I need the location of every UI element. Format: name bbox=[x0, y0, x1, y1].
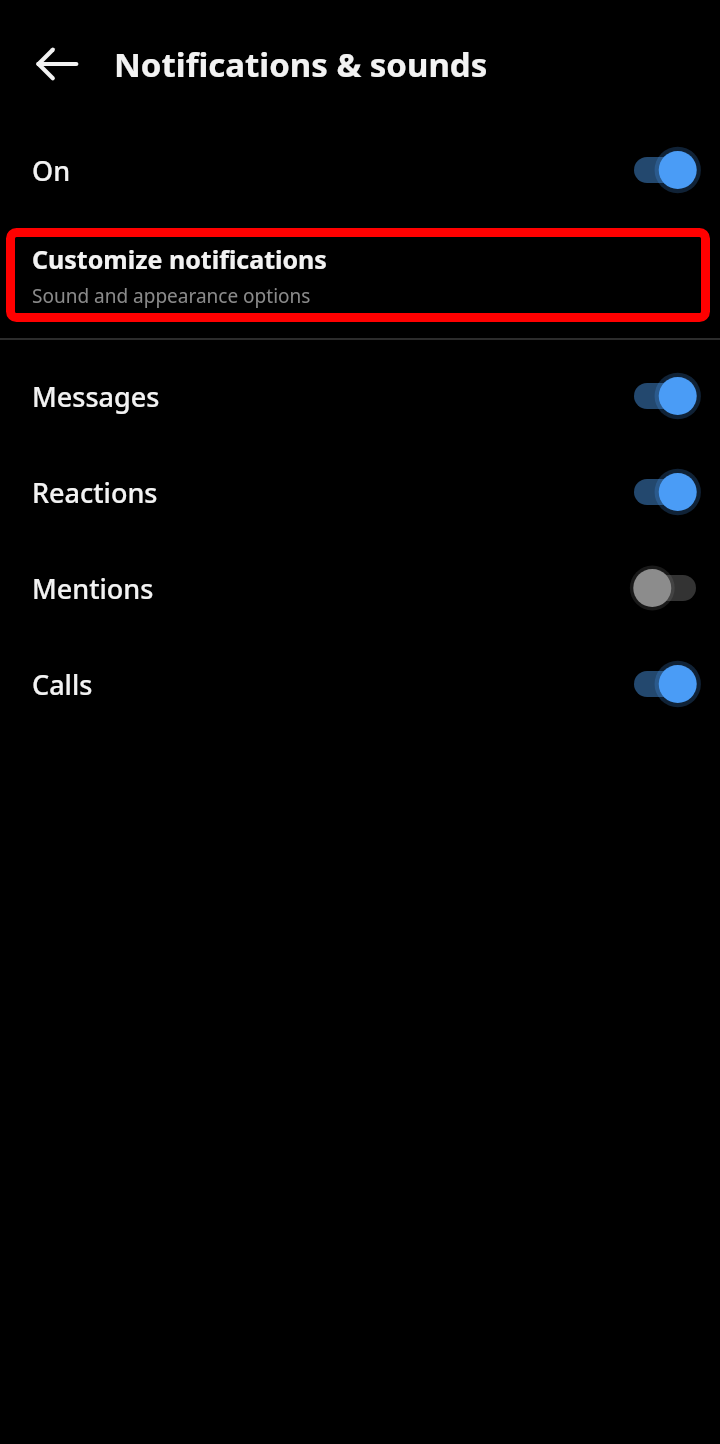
button[interactable]: Mentions bbox=[0, 540, 720, 636]
staticText: Reactions bbox=[32, 474, 619, 511]
button[interactable]: Messages bbox=[0, 348, 720, 444]
button[interactable]: On bbox=[0, 128, 720, 212]
button[interactable]: Calls bbox=[619, 656, 711, 712]
button[interactable]: Reactions bbox=[0, 444, 720, 540]
staticText: Calls bbox=[32, 666, 619, 703]
button[interactable]: Messages bbox=[619, 368, 711, 424]
button[interactable]: Reactions bbox=[619, 464, 711, 520]
staticText: Sound and appearance options bbox=[32, 283, 311, 309]
staticText: On bbox=[32, 152, 619, 189]
button[interactable]: Calls bbox=[0, 636, 720, 732]
button[interactable]: Customize notifications bbox=[6, 228, 710, 322]
button[interactable]: Mentions bbox=[619, 560, 711, 616]
staticText: Mentions bbox=[32, 570, 619, 607]
button[interactable]: On bbox=[619, 142, 711, 198]
staticText: Notifications & sounds bbox=[114, 42, 488, 87]
staticText: Messages bbox=[32, 378, 619, 415]
button[interactable]: Back bbox=[21, 28, 93, 100]
staticText: Customize notifications bbox=[32, 242, 327, 276]
